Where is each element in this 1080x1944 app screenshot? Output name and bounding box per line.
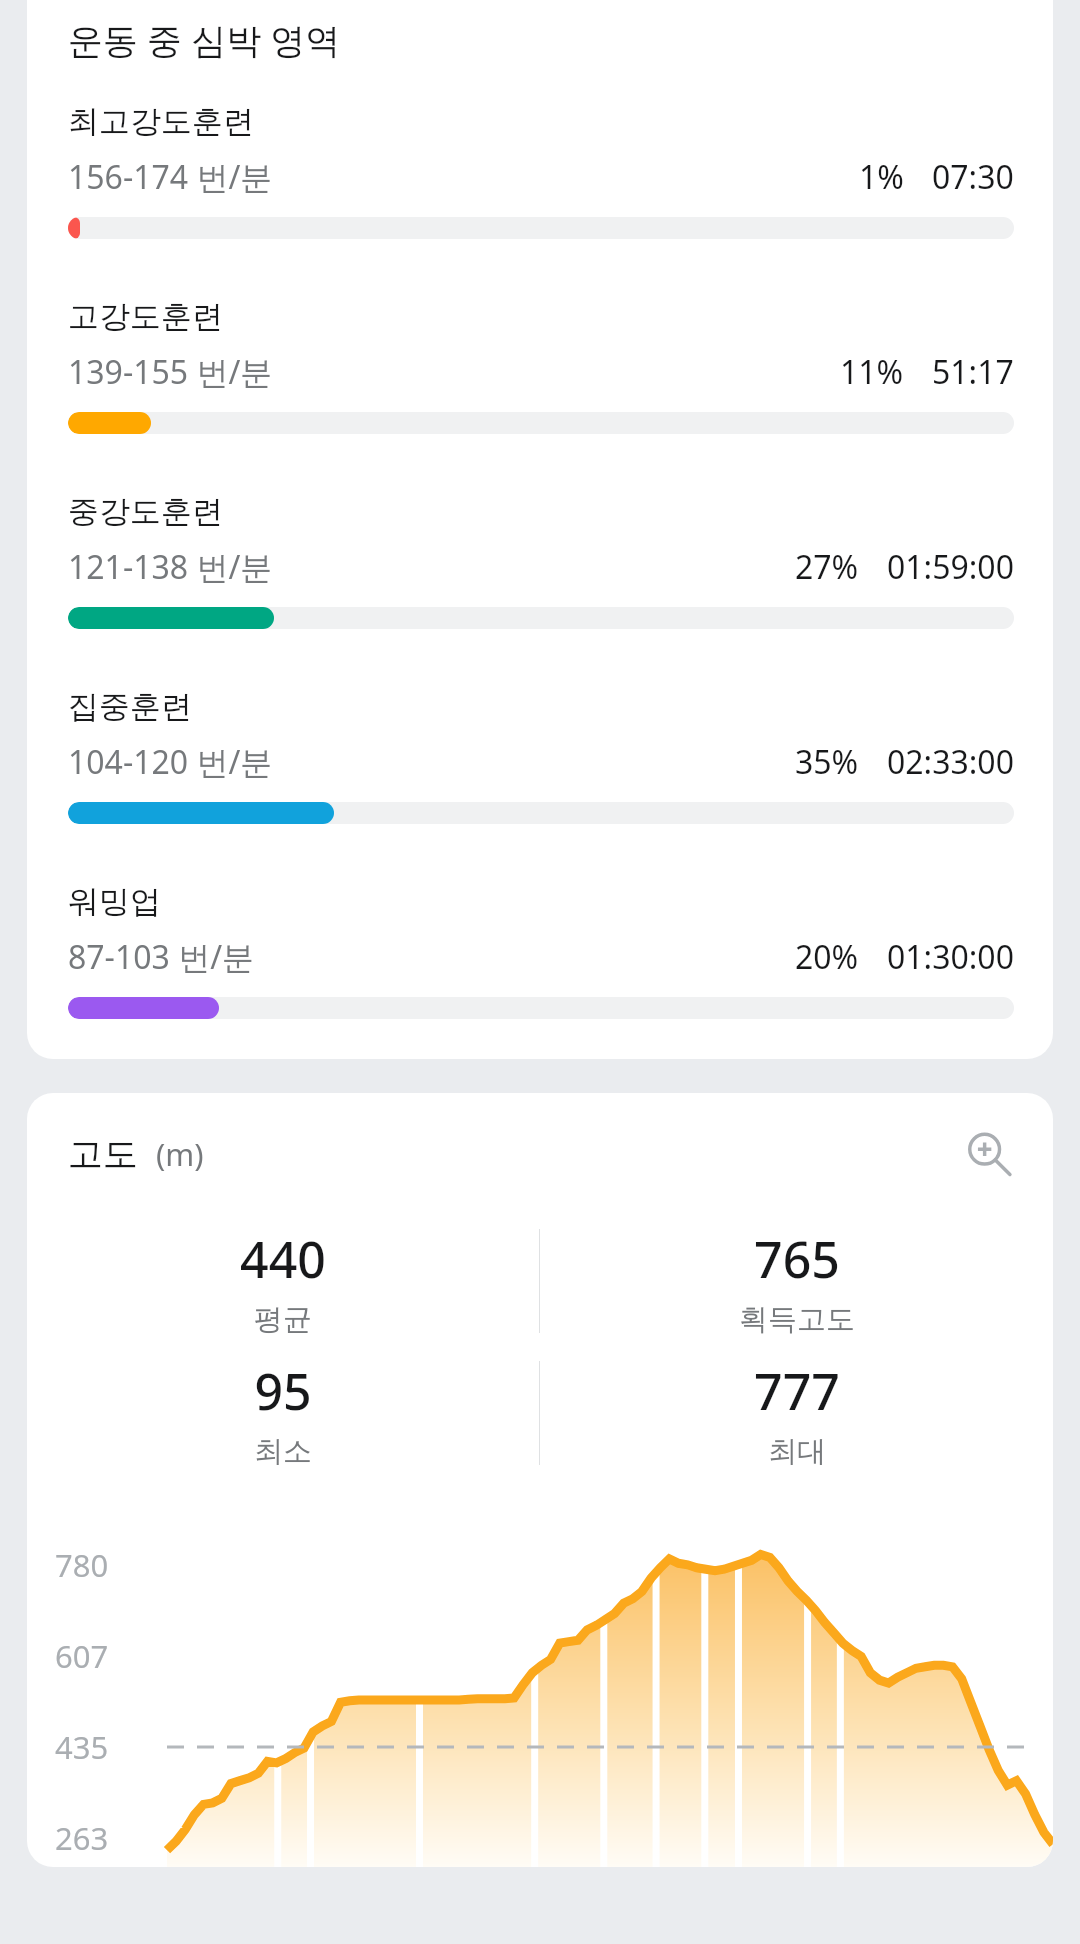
staticText: 777	[754, 1357, 840, 1425]
staticText: 139-155 번/분	[68, 350, 273, 394]
staticText: 중강도훈련	[68, 492, 223, 531]
staticText: 획득고도	[739, 1301, 855, 1338]
button[interactable]: 고강도훈련	[68, 297, 1014, 434]
staticText: 27%	[795, 545, 859, 589]
staticText: 440	[240, 1225, 326, 1293]
staticText: 고도	[68, 1132, 138, 1176]
staticText: 평균	[254, 1301, 312, 1338]
staticText: 1%	[859, 155, 904, 199]
staticText: 집중훈련	[68, 687, 192, 726]
button[interactable]: 중강도훈련	[68, 492, 1014, 629]
button[interactable]: 최고강도훈련	[68, 102, 1014, 239]
staticText: 263	[55, 1817, 109, 1859]
staticText: 최소	[254, 1433, 312, 1470]
staticText: 87-103 번/분	[68, 935, 255, 979]
staticText: 02:33:00	[887, 740, 1014, 784]
staticText: (m)	[156, 1133, 204, 1175]
staticText: 워밍업	[68, 882, 161, 921]
staticText: 35%	[795, 740, 859, 784]
staticText: 운동 중 심박 영역	[68, 16, 341, 64]
button[interactable]: 지도 확대	[957, 1123, 1019, 1185]
staticText: 435	[55, 1726, 109, 1768]
staticText: 51:17	[932, 350, 1014, 394]
staticText: 최고강도훈련	[68, 102, 254, 141]
staticText: 780	[55, 1544, 109, 1586]
staticText: 95	[254, 1357, 312, 1425]
staticText: 최대	[768, 1433, 826, 1470]
staticText: 고강도훈련	[68, 297, 223, 336]
staticText: 156-174 번/분	[68, 155, 273, 199]
staticText: 607	[55, 1635, 109, 1677]
staticText: 121-138 번/분	[68, 545, 273, 589]
button[interactable]: 워밍업	[68, 882, 1014, 1019]
staticText: 01:30:00	[887, 935, 1014, 979]
staticText: 20%	[795, 935, 859, 979]
staticText: 765	[754, 1225, 840, 1293]
button[interactable]: 집중훈련	[68, 687, 1014, 824]
staticText: 104-120 번/분	[68, 740, 273, 784]
staticText: 11%	[840, 350, 904, 394]
staticText: 01:59:00	[887, 545, 1014, 589]
staticText: 07:30	[932, 155, 1014, 199]
